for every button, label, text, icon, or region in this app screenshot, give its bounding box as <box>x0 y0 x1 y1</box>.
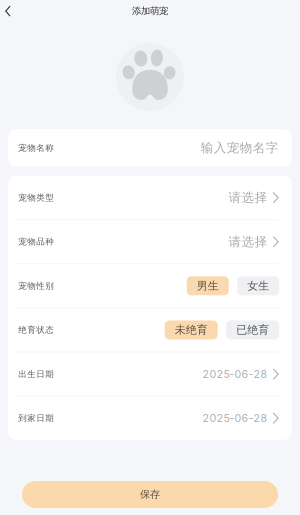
staticText: 宠物品种 <box>18 236 54 247</box>
staticText: 添加萌宠 <box>132 5 168 17</box>
staticText: 已绝育 <box>236 323 269 337</box>
staticText: 女生 <box>247 279 269 293</box>
staticText: 2025-06-28 <box>202 368 267 380</box>
button[interactable]: 出生日期 <box>8 352 292 396</box>
button[interactable]: 未绝育 <box>165 320 218 339</box>
button[interactable]: 宠物类型 <box>8 176 292 219</box>
button[interactable]: 男生 <box>187 276 229 295</box>
button[interactable]: 到家日期 <box>8 396 292 440</box>
button[interactable]: 宠物品种 <box>8 220 292 263</box>
staticText: 保存 <box>140 488 160 501</box>
button[interactable]: Pet photo <box>116 43 184 111</box>
staticText: 出生日期 <box>18 369 54 379</box>
button[interactable]: 女生 <box>237 276 279 295</box>
button[interactable]: 保存 <box>22 481 278 508</box>
staticText: 宠物名称 <box>18 142 54 153</box>
staticText: 宠物类型 <box>18 192 54 203</box>
staticText: 未绝育 <box>175 323 208 337</box>
staticText: 到家日期 <box>18 413 54 424</box>
staticText: 宠物性别 <box>18 280 54 291</box>
button[interactable]: 已绝育 <box>226 320 279 339</box>
staticText: 男生 <box>197 279 219 293</box>
staticText: 输入宠物名字 <box>201 140 279 156</box>
button[interactable]: Back <box>0 0 20 21</box>
staticText: 请选择 <box>228 190 267 206</box>
staticText: 请选择 <box>228 234 267 250</box>
staticText: 绝育状态 <box>18 325 54 335</box>
staticText: 2025-06-28 <box>202 412 267 425</box>
